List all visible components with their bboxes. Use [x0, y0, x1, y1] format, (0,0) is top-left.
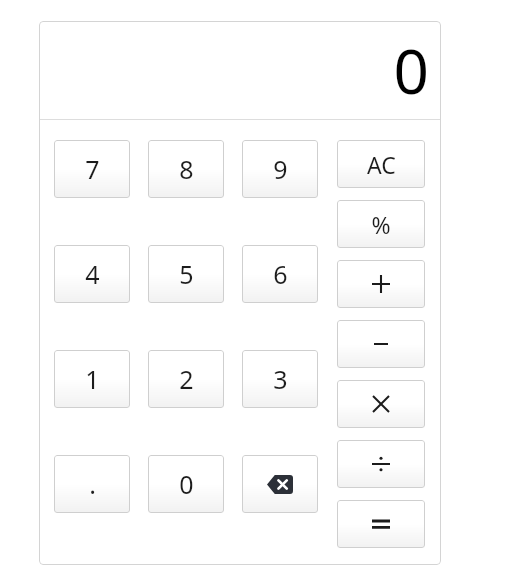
button[interactable]: AC	[337, 140, 425, 188]
staticText: 4	[85, 257, 100, 291]
button[interactable]: Multiply	[337, 380, 425, 428]
staticText: 0	[393, 28, 429, 112]
staticText: .	[89, 467, 96, 501]
button[interactable]: 3	[242, 350, 318, 408]
button[interactable]: .	[54, 455, 130, 513]
button[interactable]: Plus	[337, 260, 425, 308]
button[interactable]: Divide	[337, 440, 425, 488]
button[interactable]: 1	[54, 350, 130, 408]
button[interactable]: Equals	[337, 500, 425, 548]
button[interactable]: %	[337, 200, 425, 248]
button[interactable]: 2	[148, 350, 224, 408]
button[interactable]: Backspace	[242, 455, 318, 513]
staticText: 9	[273, 152, 288, 186]
staticText: 7	[85, 152, 100, 186]
staticText: AC	[367, 149, 396, 180]
staticText: 5	[179, 257, 194, 291]
staticText: 1	[85, 362, 100, 396]
button[interactable]: 5	[148, 245, 224, 303]
staticText: 6	[273, 257, 288, 291]
staticText: 3	[273, 362, 288, 396]
button[interactable]: 6	[242, 245, 318, 303]
button[interactable]: 4	[54, 245, 130, 303]
button[interactable]: 0	[148, 455, 224, 513]
button[interactable]: 9	[242, 140, 318, 198]
staticText: %	[371, 209, 391, 240]
staticText: 0	[179, 467, 194, 501]
staticText: 2	[179, 362, 194, 396]
button[interactable]: 7	[54, 140, 130, 198]
button[interactable]: 8	[148, 140, 224, 198]
button[interactable]: Minus	[337, 320, 425, 368]
staticText: 8	[179, 152, 194, 186]
